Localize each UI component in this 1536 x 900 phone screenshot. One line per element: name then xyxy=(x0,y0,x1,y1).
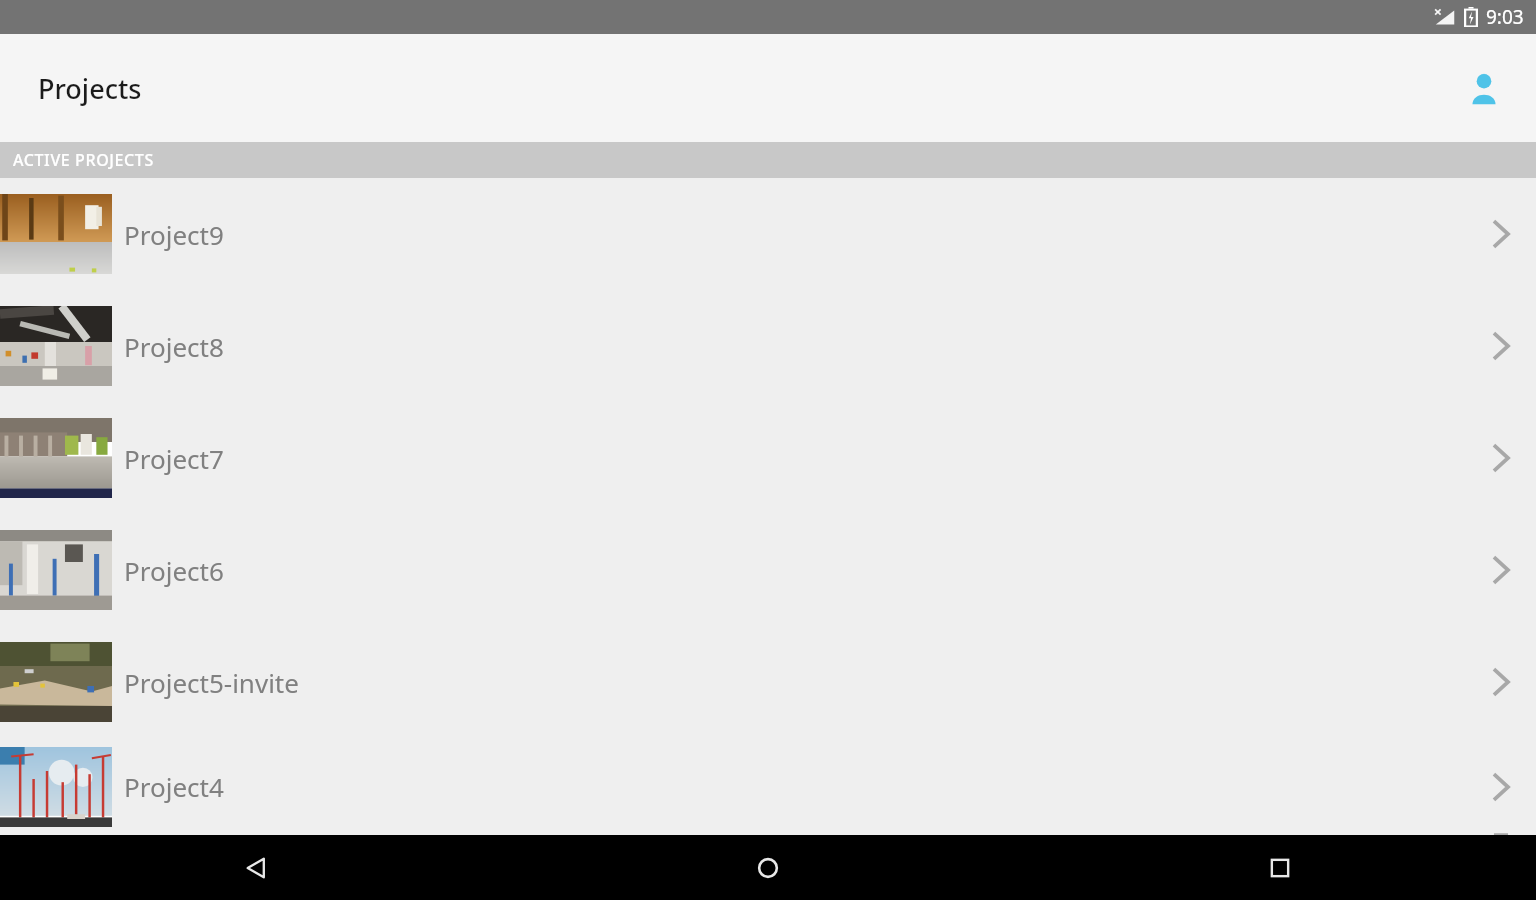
button[interactable]: Project9 xyxy=(0,178,1536,290)
button[interactable]: Back xyxy=(0,835,512,900)
staticText: Projects xyxy=(38,70,142,107)
staticText: ACTIVE PROJECTS xyxy=(13,149,154,171)
button[interactable]: Home xyxy=(512,835,1024,900)
button[interactable]: Project6 xyxy=(0,514,1536,626)
button[interactable]: Project7 xyxy=(0,402,1536,514)
staticText: Project6 xyxy=(124,553,224,588)
staticText: Project9 xyxy=(124,217,224,252)
staticText: Project7 xyxy=(124,441,224,476)
button[interactable]: Recents xyxy=(1024,835,1536,900)
button[interactable]: Project8 xyxy=(0,290,1536,402)
button[interactable]: Account xyxy=(1460,64,1508,112)
staticText: Project5-invite xyxy=(124,665,299,700)
button[interactable]: Project5-invite xyxy=(0,626,1536,738)
staticText: Project8 xyxy=(124,329,224,364)
button[interactable]: Project4 xyxy=(0,738,1536,835)
staticText: 9:03 xyxy=(1486,4,1524,30)
staticText: Project4 xyxy=(124,769,224,804)
